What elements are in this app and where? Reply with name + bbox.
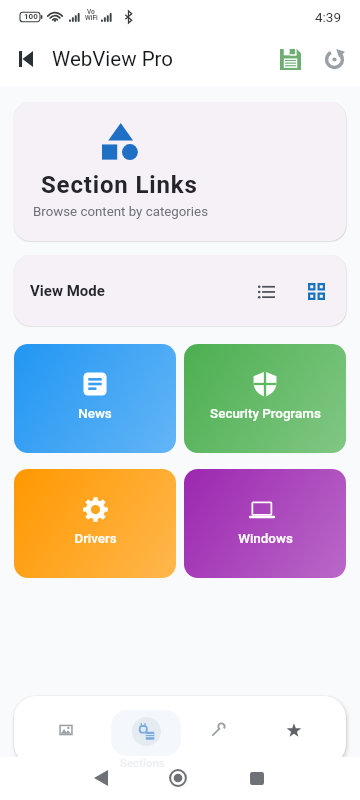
staticText: Browse content by categories xyxy=(33,204,209,220)
button[interactable]: Back xyxy=(79,756,123,800)
staticText: Vo xyxy=(87,8,95,16)
staticText: 4:39 xyxy=(315,9,342,25)
staticText: Windows xyxy=(238,531,293,547)
button[interactable]: Favorites xyxy=(256,696,332,766)
button[interactable]: Tools xyxy=(180,696,256,766)
button[interactable]: Save xyxy=(268,37,312,81)
button[interactable]: Recents xyxy=(235,756,279,800)
button[interactable]: Skip to start xyxy=(8,41,44,77)
button[interactable]: Grid view xyxy=(296,271,336,311)
button[interactable]: Refresh xyxy=(312,37,356,81)
staticText: Section Links xyxy=(41,171,198,199)
button[interactable]: Section Links xyxy=(14,102,346,241)
button[interactable]: Drivers xyxy=(14,469,176,578)
staticText: WebView Pro xyxy=(52,47,174,71)
button[interactable]: List view xyxy=(246,271,286,311)
staticText: Security Programs xyxy=(210,406,321,422)
button[interactable]: Images xyxy=(28,696,104,766)
button[interactable]: Windows xyxy=(184,469,346,578)
staticText: 100 xyxy=(24,12,38,21)
staticText: WiFi xyxy=(85,14,98,22)
button[interactable]: Security Programs xyxy=(184,344,346,453)
staticText: Sections xyxy=(120,756,165,769)
staticText: News xyxy=(78,406,112,422)
staticText: View Mode xyxy=(30,282,105,300)
button[interactable]: Home xyxy=(156,756,200,800)
button[interactable]: News xyxy=(14,344,176,453)
staticText: Drivers xyxy=(74,531,117,547)
button[interactable]: Sections xyxy=(104,696,180,766)
